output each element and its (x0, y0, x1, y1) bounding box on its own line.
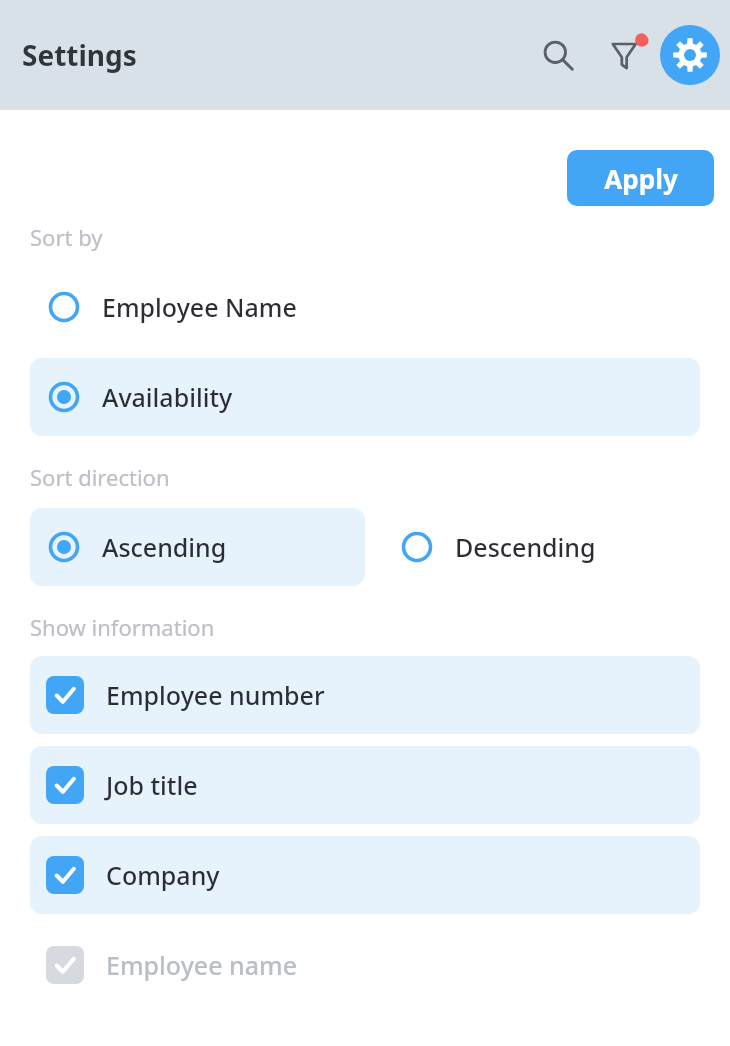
button[interactable]: Search (530, 27, 586, 83)
staticText: Employee Name (102, 290, 297, 324)
staticText: Apply (604, 161, 678, 196)
staticText: Descending (455, 530, 596, 564)
staticText: Availability (102, 380, 233, 414)
staticText: Company (106, 858, 220, 892)
staticText: Settings (22, 36, 137, 74)
button[interactable]: Filter (598, 27, 654, 83)
staticText: Employee name (106, 948, 298, 982)
button[interactable]: Job title (30, 746, 700, 824)
staticText: Employee number (106, 678, 325, 712)
staticText: Sort direction (30, 462, 170, 492)
button[interactable]: Descending (385, 508, 612, 586)
button[interactable]: Employee name (30, 926, 700, 1004)
staticText: Show information (30, 612, 215, 642)
staticText: Job title (106, 768, 198, 802)
button[interactable]: Employee number (30, 656, 700, 734)
button[interactable]: Availability (30, 358, 700, 436)
button[interactable]: Company (30, 836, 700, 914)
staticText: Ascending (102, 530, 227, 564)
button[interactable]: Settings (660, 25, 720, 85)
button[interactable]: Employee Name (30, 268, 700, 346)
button[interactable]: Ascending (30, 508, 365, 586)
staticText: Sort by (30, 222, 103, 252)
button[interactable]: Apply (567, 150, 714, 206)
